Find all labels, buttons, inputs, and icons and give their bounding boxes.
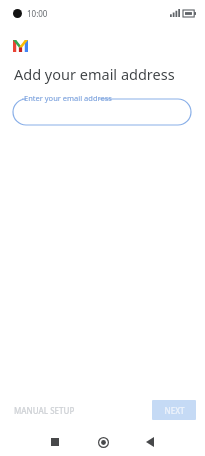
staticText: MANUAL SETUP [14,405,75,416]
staticText: Enter your email address [24,93,112,103]
staticText: NEXT [164,405,185,416]
staticText: Add your email address [14,64,175,84]
button[interactable]: Enter your email address [13,93,191,125]
button[interactable]: Recent apps [44,431,66,453]
button[interactable]: Home [92,431,114,453]
button[interactable]: MANUAL SETUP [0,401,83,420]
button[interactable]: Back [139,431,161,453]
button[interactable]: NEXT [152,400,196,420]
staticText: 10:00 [27,8,48,19]
